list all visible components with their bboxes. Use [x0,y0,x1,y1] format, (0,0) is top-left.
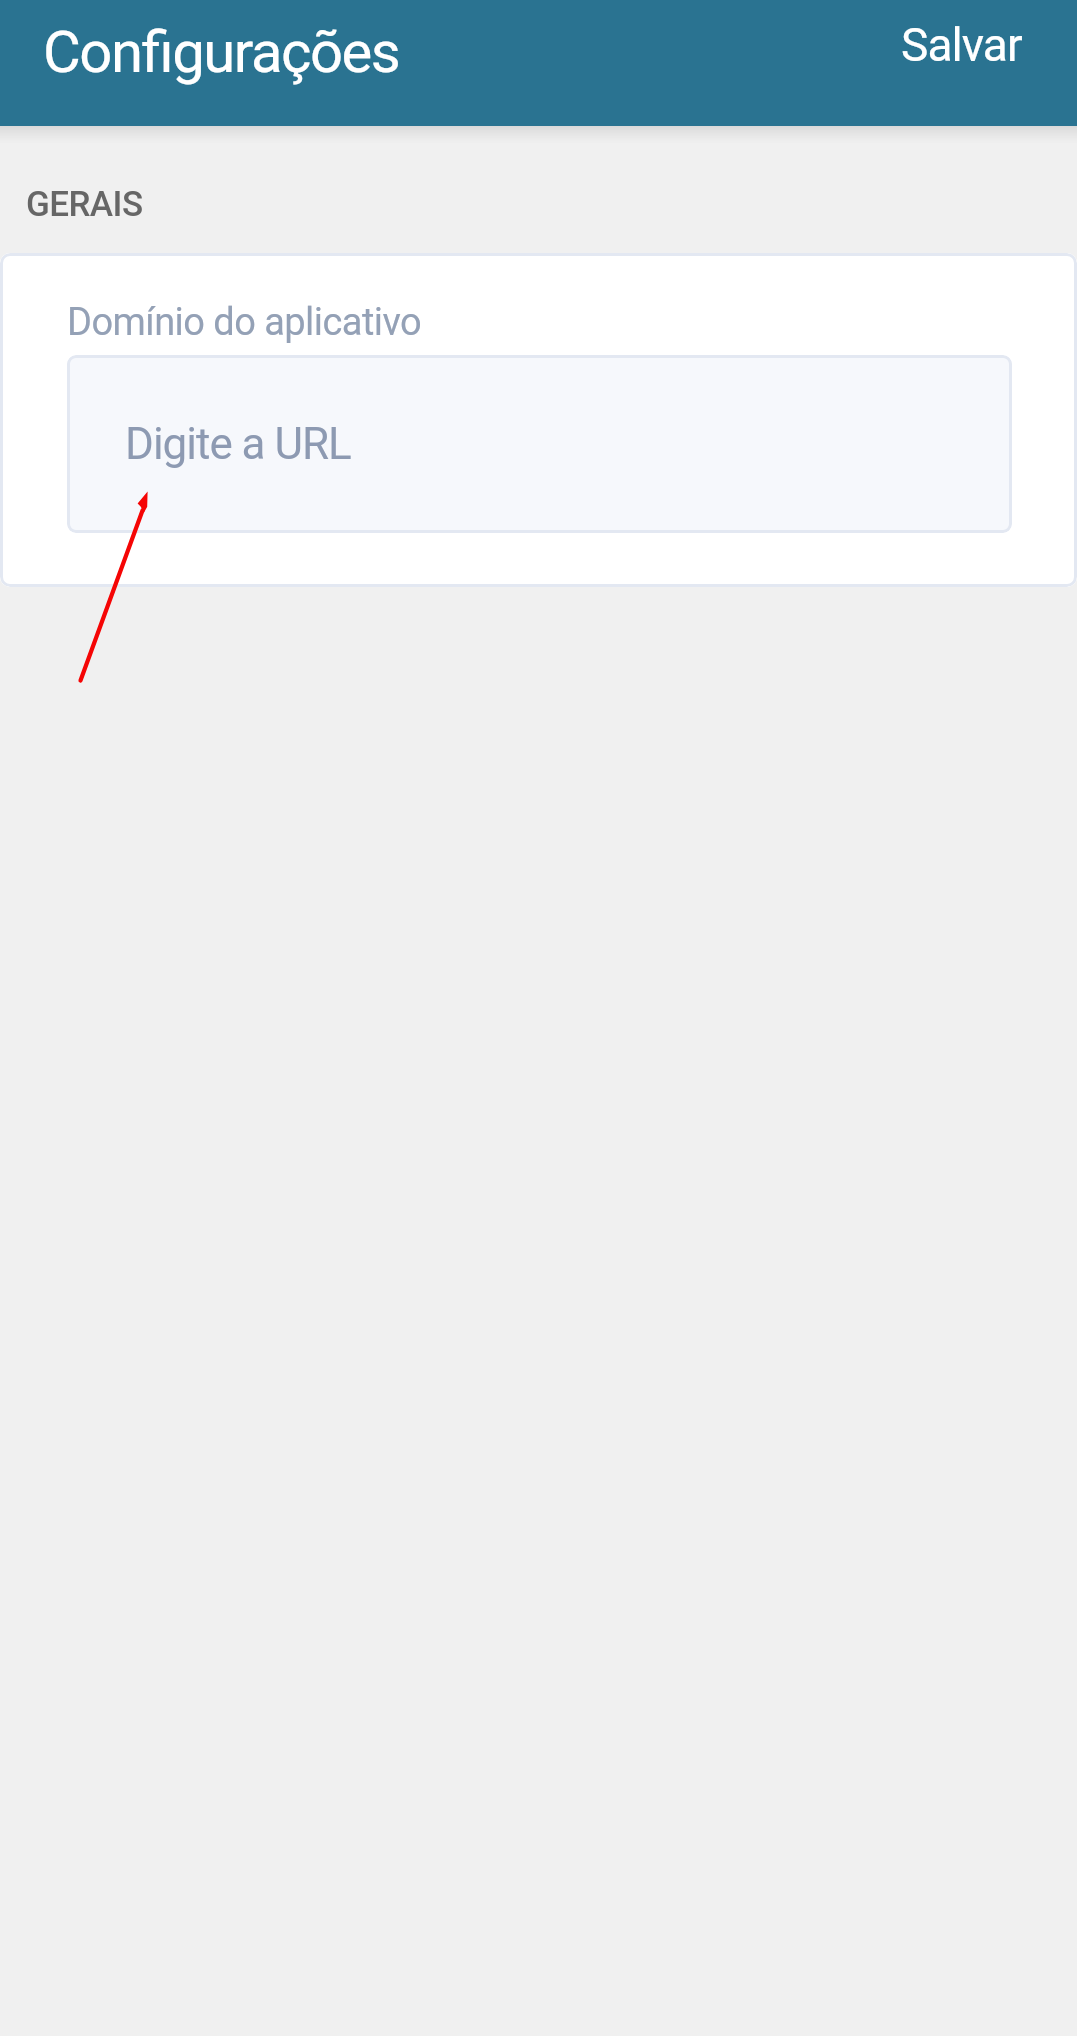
staticText: Salvar [901,18,1022,72]
button[interactable]: Salvar [891,0,1032,95]
staticText: Configurações [43,18,400,86]
other: Annotation arrow pointing at the URL fie… [70,482,160,692]
staticText: Digite a URL [125,418,351,470]
staticText: GERAIS [26,184,143,225]
button[interactable]: Digite a URL [67,355,1012,533]
staticText: Domínio do aplicativo [67,300,422,345]
